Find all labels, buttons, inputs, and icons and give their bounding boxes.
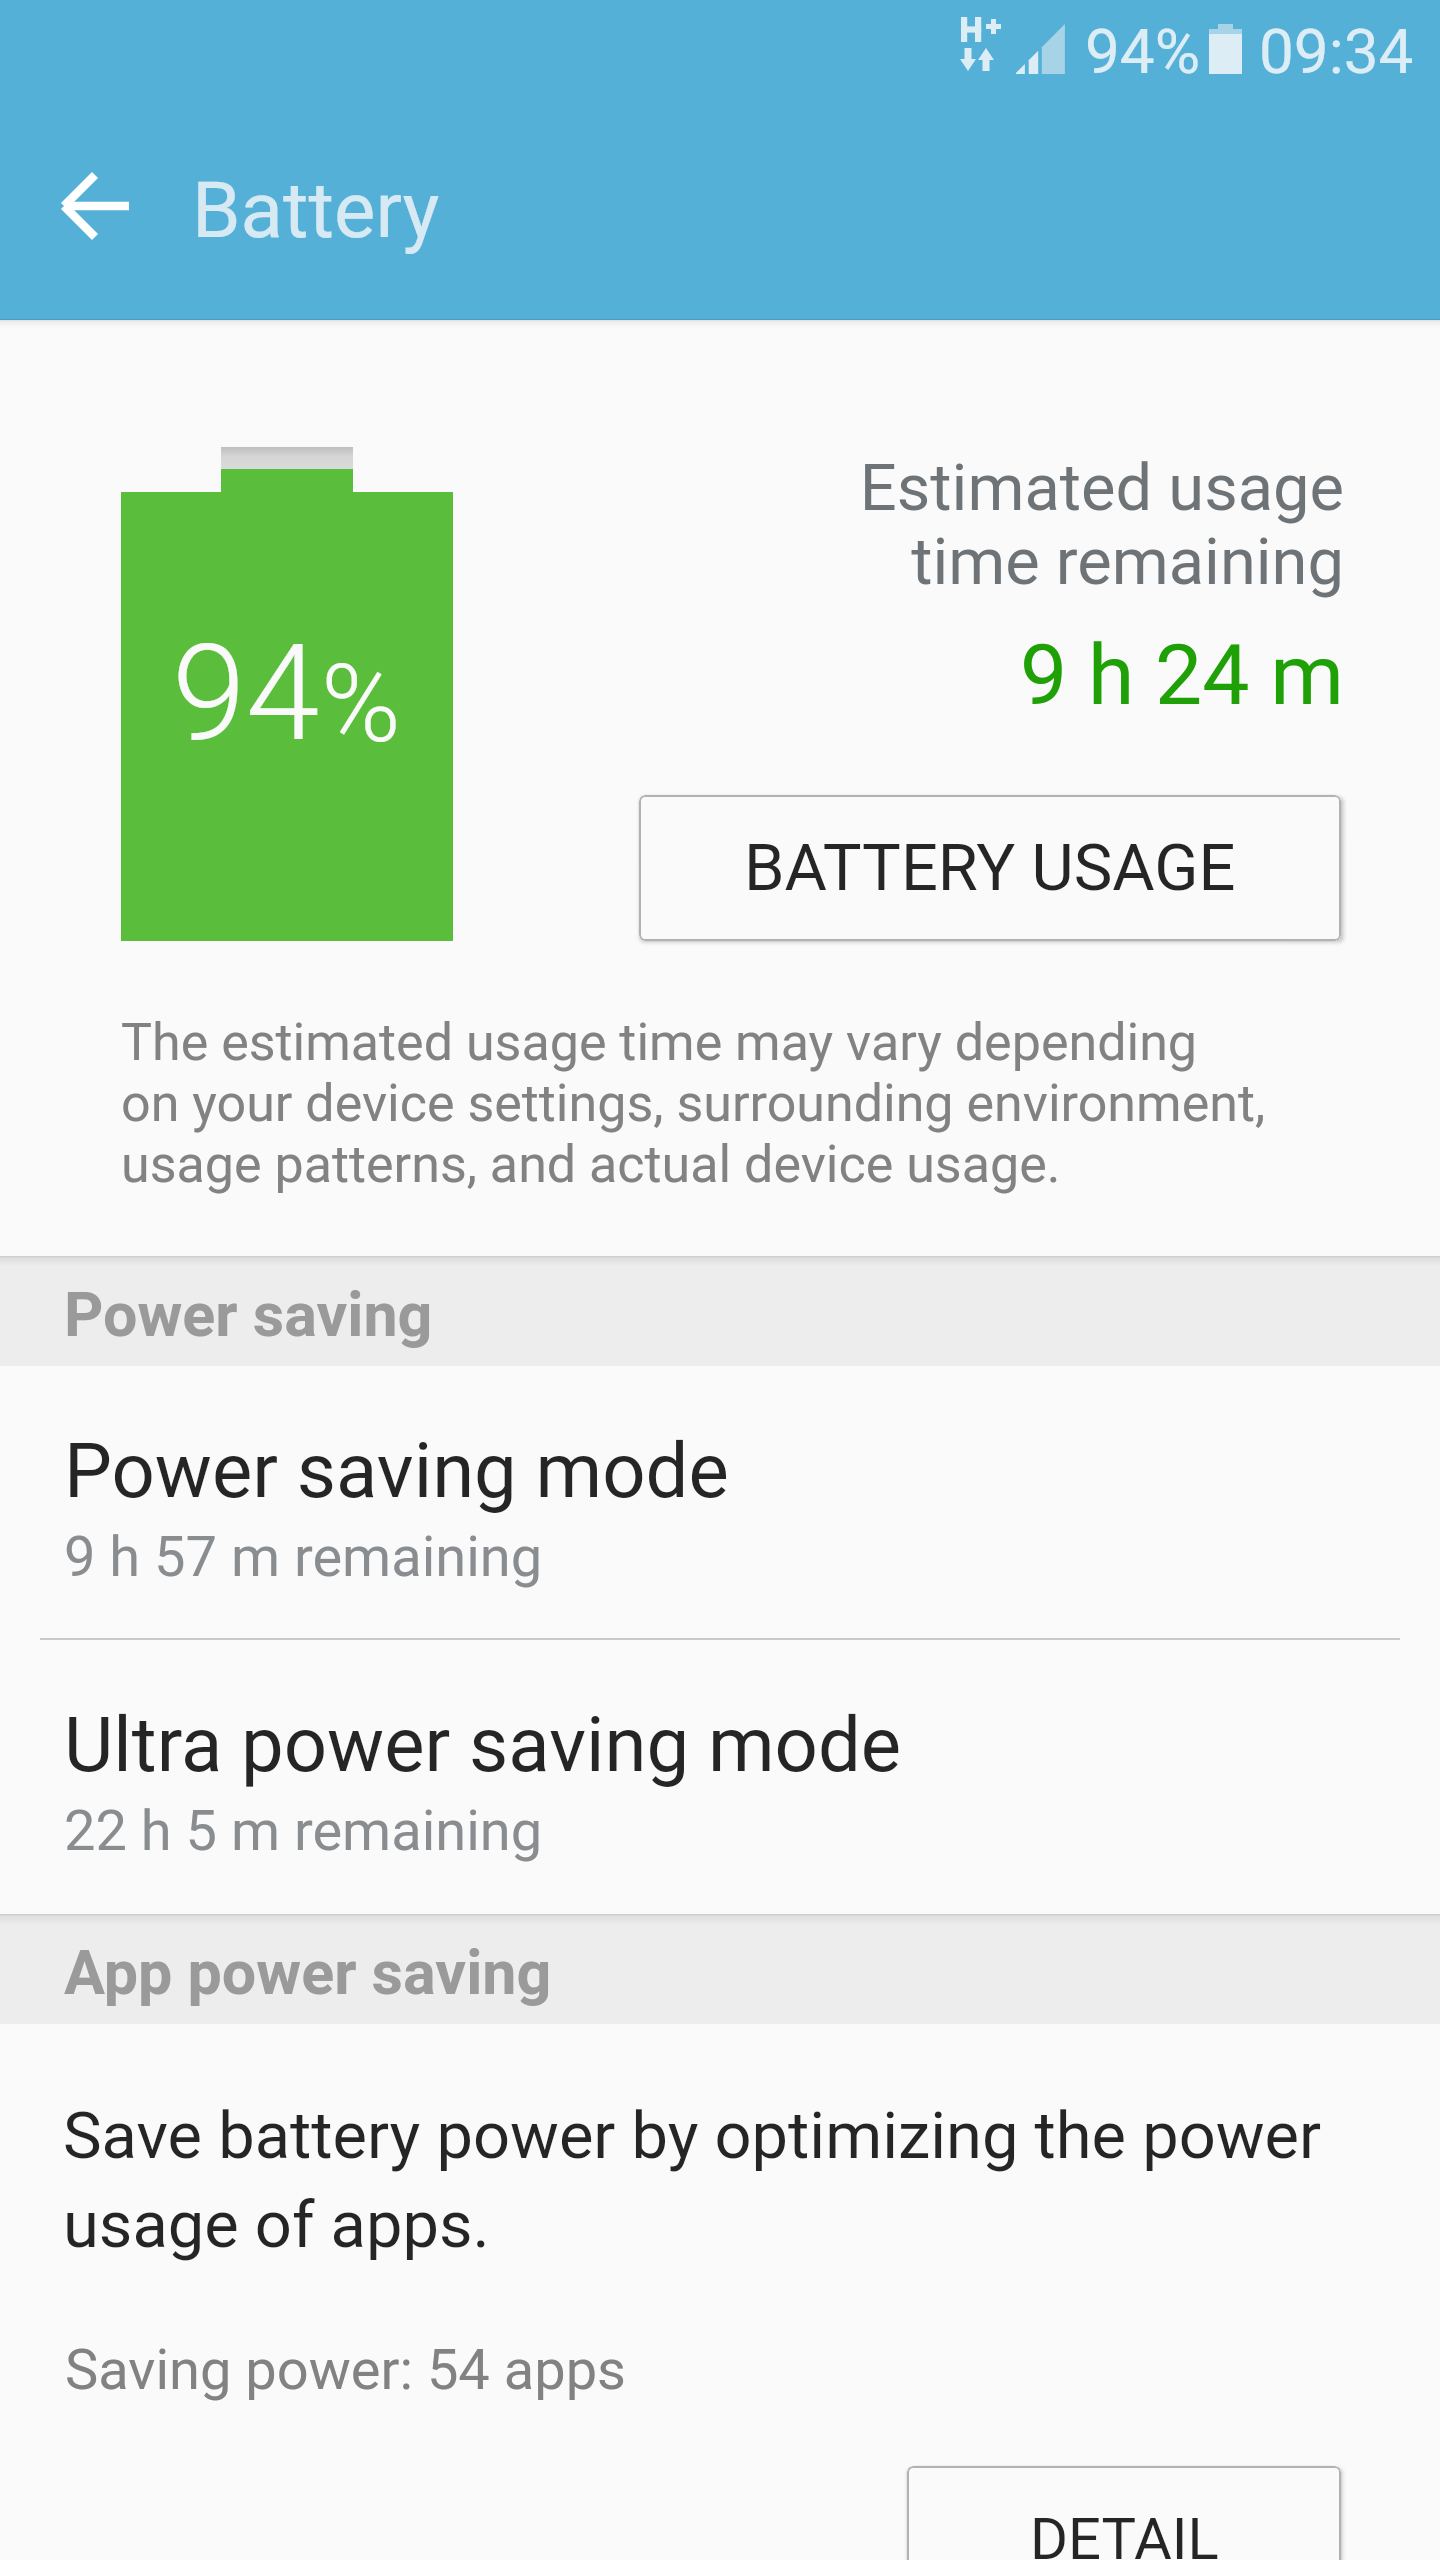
staticText: 09:34: [1259, 15, 1414, 88]
staticText: BATTERY USAGE: [744, 830, 1236, 906]
staticText: Saving power: 54 apps: [65, 2337, 626, 2403]
button[interactable]: Back: [36, 146, 156, 266]
staticText: 22 h 5 m remaining: [64, 1798, 543, 1864]
button[interactable]: Ultra power saving mode: [0, 1640, 1440, 1914]
button[interactable]: DETAIL: [907, 2466, 1341, 2560]
staticText: Save battery power by optimizing the pow…: [63, 2098, 1322, 2263]
staticText: DETAIL: [1030, 2505, 1219, 2560]
button[interactable]: BATTERY USAGE: [639, 795, 1341, 941]
staticText: App power saving: [64, 1937, 552, 2008]
staticText: 94%: [1085, 15, 1201, 88]
staticText: Power saving mode: [64, 1426, 729, 1515]
staticText: Estimated usage time remaining: [642, 450, 1344, 600]
staticText: Battery: [192, 165, 440, 256]
staticText: %: [321, 641, 401, 768]
staticText: Power saving: [64, 1279, 433, 1350]
staticText: Ultra power saving mode: [64, 1700, 902, 1789]
staticText: 94: [172, 616, 320, 772]
button[interactable]: Power saving mode: [0, 1366, 1440, 1640]
staticText: 9 h 24 m: [642, 626, 1344, 724]
staticText: The estimated usage time may vary depend…: [121, 1012, 1266, 1195]
staticText: 9 h 57 m remaining: [64, 1524, 543, 1590]
